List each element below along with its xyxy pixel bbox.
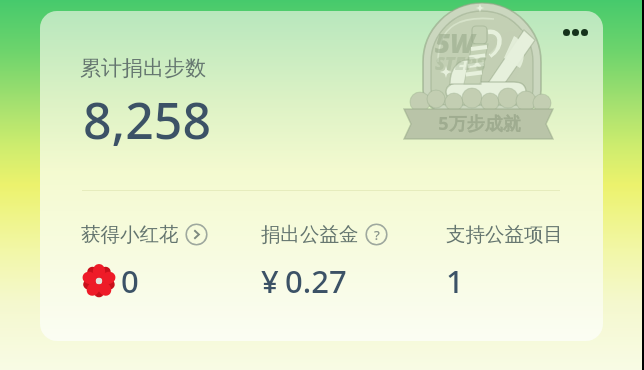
- button[interactable]: 捐出公益金: [261, 222, 388, 302]
- button[interactable]: 支持公益项目: [446, 222, 563, 302]
- staticText: 0.27: [285, 260, 347, 302]
- staticText: 5万步成就: [438, 111, 521, 136]
- staticText: ?: [374, 226, 380, 244]
- staticText: 捐出公益金: [261, 222, 359, 247]
- staticText: ¥: [261, 260, 279, 302]
- staticText: 5W: [435, 25, 475, 60]
- staticText: 支持公益项目: [446, 222, 563, 247]
- staticText: 1: [446, 260, 464, 302]
- staticText: 0: [121, 260, 139, 302]
- button[interactable]: 获得小红花: [81, 222, 208, 302]
- staticText: 8,258: [83, 86, 212, 154]
- staticText: STEPS: [435, 51, 486, 76]
- button[interactable]: More options: [557, 23, 594, 42]
- staticText: 累计捐出步数: [80, 55, 206, 81]
- staticText: 获得小红花: [81, 222, 179, 247]
